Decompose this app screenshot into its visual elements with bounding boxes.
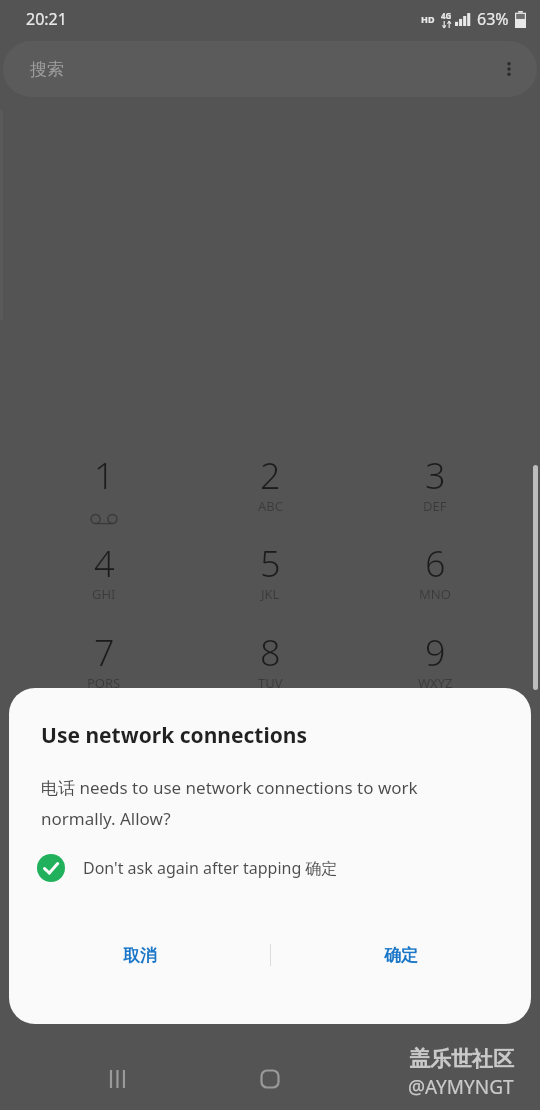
staticText: MNO xyxy=(419,585,451,603)
button[interactable]: 确定 xyxy=(270,928,531,982)
button[interactable]: 8 xyxy=(220,628,320,708)
staticText: DEF xyxy=(423,497,447,515)
staticText: 20:21 xyxy=(26,8,67,30)
button[interactable]: 6 xyxy=(385,539,485,619)
button[interactable]: 9 xyxy=(385,628,485,708)
staticText: ABC xyxy=(258,497,283,515)
staticText: PQRS xyxy=(87,674,121,692)
button[interactable]: Don't ask again after tapping 确定 xyxy=(37,854,503,882)
staticText: Don't ask again after tapping 确定 xyxy=(83,857,338,879)
button[interactable]: 1 xyxy=(54,451,154,531)
staticText: JKL xyxy=(261,585,280,603)
staticText: 6 xyxy=(425,539,446,588)
staticText: 7 xyxy=(94,628,115,677)
button[interactable]: 取消 xyxy=(9,928,270,982)
staticText: TUV xyxy=(258,674,283,692)
staticText: 5 xyxy=(260,539,281,588)
button[interactable]: 4 xyxy=(54,539,154,619)
button[interactable]: 7 xyxy=(54,628,154,708)
staticText: 4G xyxy=(441,10,452,21)
staticText: GHI xyxy=(92,585,116,603)
staticText: 取消 xyxy=(123,945,157,966)
staticText: 确定 xyxy=(384,945,418,966)
staticText: 4 xyxy=(94,539,115,588)
staticText: 2 xyxy=(260,451,281,500)
staticText: 63% xyxy=(477,8,509,30)
button[interactable]: 2 xyxy=(220,451,320,531)
button[interactable]: Recents xyxy=(90,1049,150,1109)
staticText: 8 xyxy=(260,628,281,677)
staticText: 电话 needs to use network connections to w… xyxy=(41,776,451,830)
button[interactable]: More options xyxy=(481,41,537,97)
button[interactable]: Home xyxy=(240,1049,300,1109)
staticText: Use network connections xyxy=(41,721,308,750)
staticText: HD xyxy=(421,13,435,25)
staticText: WXYZ xyxy=(418,674,453,692)
staticText: @AYMYNGT xyxy=(408,1074,514,1100)
button[interactable]: 3 xyxy=(385,451,485,531)
button[interactable]: 5 xyxy=(220,539,320,619)
staticText: 盖乐世社区 xyxy=(409,1046,514,1072)
staticText: 1 xyxy=(94,451,115,500)
staticText: 搜索 xyxy=(30,59,64,80)
staticText: 3 xyxy=(425,451,446,500)
button[interactable]: 搜索 xyxy=(3,41,537,97)
staticText: 9 xyxy=(425,628,446,677)
